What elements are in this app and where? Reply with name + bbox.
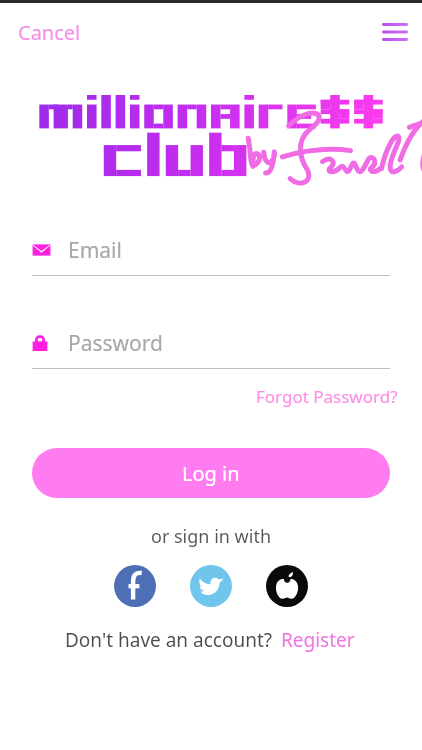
other: Email xyxy=(32,242,62,258)
button[interactable]: Password xyxy=(32,324,390,362)
button[interactable]: Cancel xyxy=(8,13,91,52)
staticText: Don't have an account? xyxy=(65,627,273,653)
other: Password xyxy=(32,335,62,352)
button[interactable]: Log in xyxy=(32,448,390,498)
staticText: Forgot Password? xyxy=(256,385,398,408)
button[interactable]: Register xyxy=(279,625,357,655)
staticText: Register xyxy=(281,627,355,653)
button[interactable]: Sign in with Twitter xyxy=(190,565,232,607)
staticText: Log in xyxy=(182,460,240,487)
button[interactable]: Menu xyxy=(374,15,416,49)
staticText: Email xyxy=(68,236,122,265)
button[interactable]: Sign in with Facebook xyxy=(114,565,156,607)
staticText: Password xyxy=(68,329,163,358)
button[interactable]: Sign in with Apple xyxy=(266,565,308,607)
staticText: Cancel xyxy=(18,19,81,46)
staticText: or sign in with xyxy=(0,524,422,549)
button[interactable]: Forgot Password? xyxy=(252,381,402,412)
button[interactable]: Email xyxy=(32,231,390,269)
